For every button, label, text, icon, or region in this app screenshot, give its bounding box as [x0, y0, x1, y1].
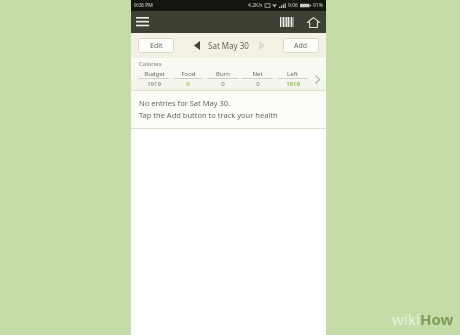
- button[interactable]: Add: [283, 38, 319, 53]
- staticText: 0: [256, 80, 260, 88]
- button[interactable]: Previous day: [190, 38, 203, 53]
- button[interactable]: Calories: [131, 58, 326, 90]
- staticText: Left: [287, 70, 298, 78]
- staticText: 9:06: [288, 2, 298, 9]
- staticText: 9:06 PM: [134, 2, 153, 9]
- button[interactable]: Home: [304, 13, 322, 31]
- staticText: Net: [252, 70, 263, 78]
- staticText: How: [420, 309, 454, 329]
- button[interactable]: More details: [310, 69, 324, 89]
- button[interactable]: Edit: [138, 38, 174, 53]
- staticText: 1919: [286, 80, 300, 88]
- button[interactable]: Scan barcode: [278, 13, 296, 31]
- staticText: Burn: [216, 70, 230, 78]
- staticText: Add: [294, 41, 308, 51]
- staticText: 4.2K/s: [248, 2, 263, 9]
- staticText: 1919: [147, 80, 161, 88]
- staticText: wiki: [392, 309, 420, 329]
- staticText: Calories: [139, 60, 162, 68]
- button[interactable]: Menu: [131, 11, 153, 33]
- button[interactable]: Next day: [255, 38, 268, 53]
- staticText: 0: [186, 80, 190, 88]
- staticText: Tap the Add button to track your health: [139, 110, 278, 120]
- staticText: Budget: [144, 70, 165, 78]
- staticText: 0: [221, 80, 225, 88]
- staticText: No entries for Sat May 30.: [139, 98, 231, 108]
- staticText: Sat May 30: [208, 40, 249, 51]
- staticText: Food: [181, 70, 196, 78]
- staticText: 91%: [313, 2, 323, 9]
- staticText: Edit: [150, 41, 163, 51]
